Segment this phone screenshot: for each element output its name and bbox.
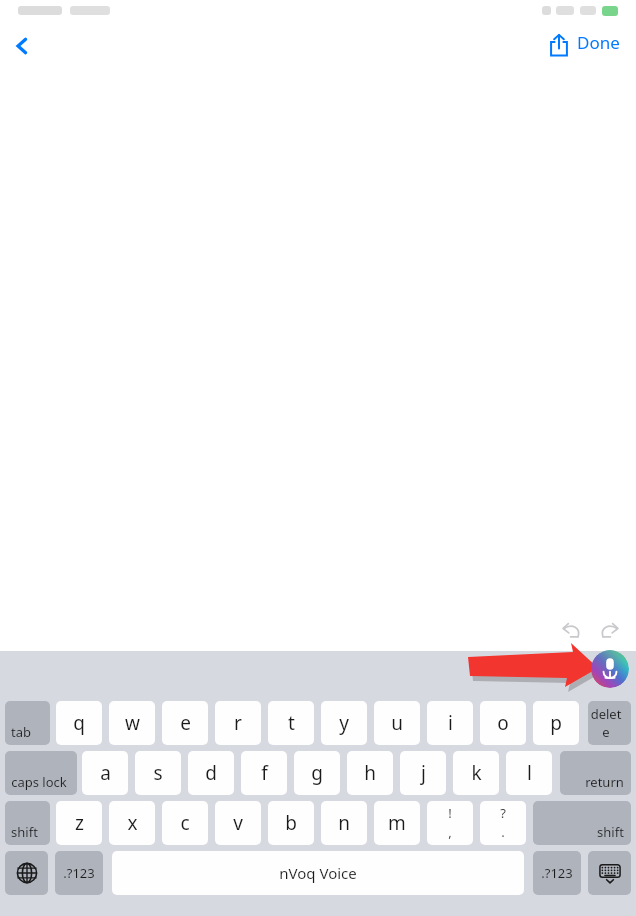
staticText: v [233, 810, 243, 836]
button[interactable]: Hide keyboard [588, 851, 631, 895]
button[interactable]: shift [533, 801, 631, 845]
staticText: u [391, 710, 403, 736]
staticText: ! [448, 804, 452, 822]
button[interactable]: x [109, 801, 155, 845]
button[interactable]: q [56, 701, 102, 745]
staticText: , [448, 823, 452, 841]
button[interactable]: caps lock [5, 751, 77, 795]
staticText: nVoq Voice [279, 863, 357, 883]
button[interactable]: Voice input [591, 650, 629, 688]
button[interactable]: y [321, 701, 367, 745]
button[interactable]: c [162, 801, 208, 845]
button[interactable]: shift [5, 801, 50, 845]
button[interactable]: a [82, 751, 128, 795]
staticText: s [153, 760, 163, 786]
button[interactable]: .?123 [533, 851, 581, 895]
staticText: t [288, 710, 295, 736]
button[interactable]: Change keyboard [5, 851, 48, 895]
staticText: c [180, 810, 190, 836]
staticText: .?123 [63, 864, 95, 882]
staticText: k [471, 760, 482, 786]
button[interactable]: m [374, 801, 420, 845]
staticText: . [501, 823, 505, 841]
staticText: l [527, 760, 532, 786]
staticText: h [364, 760, 376, 786]
button[interactable]: t [268, 701, 314, 745]
staticText: e [180, 710, 191, 736]
staticText: i [448, 710, 453, 736]
staticText: q [73, 710, 85, 736]
button[interactable]: s [135, 751, 181, 795]
staticText: z [75, 810, 84, 836]
button[interactable]: u [374, 701, 420, 745]
button[interactable]: r [215, 701, 261, 745]
staticText: y [339, 710, 349, 736]
staticText: o [497, 710, 509, 736]
button[interactable]: k [453, 751, 499, 795]
button[interactable]: h [347, 751, 393, 795]
button[interactable]: Done [569, 26, 628, 59]
button[interactable]: d [188, 751, 234, 795]
staticText: d [205, 760, 217, 786]
button[interactable]: e [162, 701, 208, 745]
staticText: tab [11, 723, 31, 741]
staticText: shift [597, 823, 624, 841]
button[interactable]: o [480, 701, 526, 745]
staticText: f [261, 760, 268, 786]
button[interactable]: b [268, 801, 314, 845]
button[interactable]: tab [5, 701, 50, 745]
staticText: x [127, 810, 138, 836]
button[interactable]: .?123 [55, 851, 103, 895]
staticText: caps lock [11, 773, 67, 791]
staticText: w [125, 710, 140, 736]
staticText: r [234, 710, 242, 736]
staticText: g [311, 760, 323, 786]
staticText: b [285, 810, 297, 836]
staticText: p [550, 710, 562, 736]
staticText: .?123 [541, 864, 573, 882]
staticText: Done [577, 31, 620, 54]
button[interactable]: z [56, 801, 102, 845]
button[interactable]: nVoq Voice [112, 851, 524, 895]
button[interactable]: w [109, 701, 155, 745]
button[interactable]: Back [0, 24, 44, 68]
staticText: delete [588, 705, 624, 741]
button[interactable]: Share [538, 24, 580, 66]
button[interactable]: j [400, 751, 446, 795]
button[interactable]: g [294, 751, 340, 795]
staticText: shift [11, 823, 38, 841]
button[interactable]: ! [427, 801, 473, 845]
button[interactable]: n [321, 801, 367, 845]
button[interactable]: delete [588, 701, 631, 745]
button[interactable]: ? [480, 801, 526, 845]
button[interactable]: i [427, 701, 473, 745]
staticText: j [421, 760, 426, 786]
staticText: m [388, 810, 406, 836]
button[interactable]: f [241, 751, 287, 795]
staticText: return [585, 773, 624, 791]
staticText: ? [500, 804, 506, 822]
button[interactable]: l [506, 751, 552, 795]
button[interactable]: Undo [551, 612, 591, 652]
button[interactable]: v [215, 801, 261, 845]
staticText: n [338, 810, 350, 836]
button[interactable]: p [533, 701, 579, 745]
button[interactable]: return [560, 751, 631, 795]
button[interactable]: Redo [590, 612, 630, 652]
staticText: a [100, 760, 111, 786]
